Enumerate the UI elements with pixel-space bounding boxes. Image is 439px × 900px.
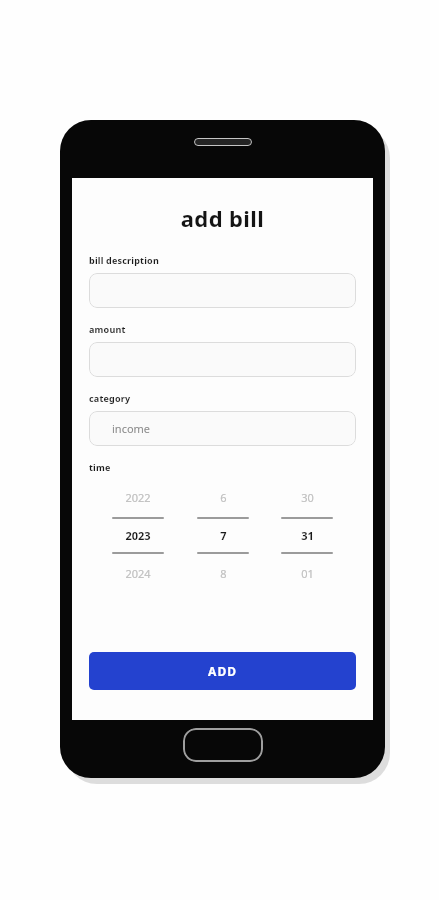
staticText: 7 [220,528,227,543]
staticText: 2022 [125,490,151,505]
staticText: amount [89,323,126,335]
staticText: income [112,421,151,436]
staticText: ADD [208,663,238,679]
button[interactable]: 2022 [112,490,164,581]
staticText: 6 [220,490,227,505]
button[interactable]: 30 [281,490,333,581]
staticText: 8 [220,566,227,581]
button[interactable] [89,273,356,308]
button[interactable]: 6 [197,490,249,581]
staticText: 31 [301,528,314,543]
staticText: 30 [301,490,314,505]
staticText: add bill [72,203,373,233]
staticText: 2024 [125,566,151,581]
button[interactable] [89,342,356,377]
staticText: 01 [301,566,314,581]
button[interactable]: ADD [89,652,356,690]
staticText: 2023 [125,528,151,543]
button[interactable]: income [89,411,356,446]
staticText: category [89,392,131,404]
staticText: bill description [89,254,159,266]
staticText: time [89,461,111,473]
button[interactable]: Home [183,728,263,762]
